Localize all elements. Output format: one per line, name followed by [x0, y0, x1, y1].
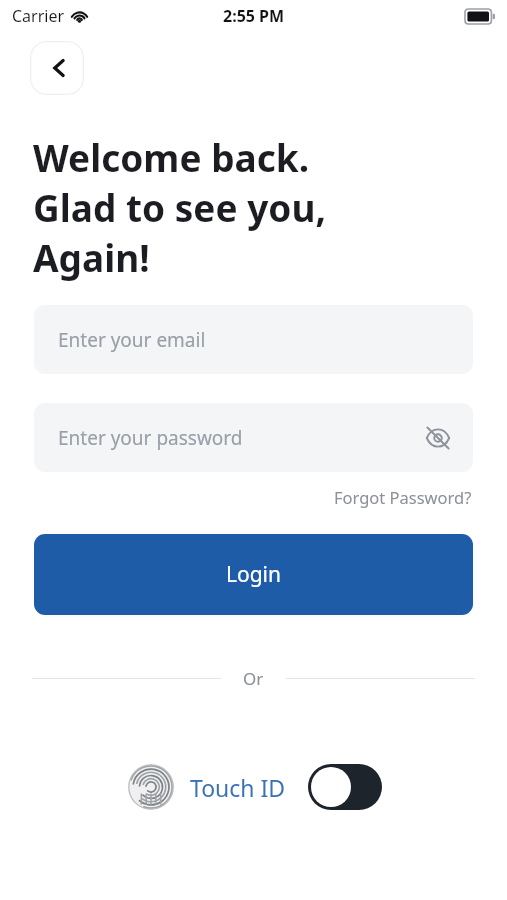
button[interactable]: Show password: [421, 421, 455, 455]
staticText: Enter your password: [58, 425, 243, 451]
button[interactable]: Back: [30, 41, 84, 95]
button[interactable]: Enter your password: [34, 403, 473, 472]
staticText: Enter your email: [58, 327, 206, 353]
staticText: Again!: [33, 232, 150, 282]
staticText: Carrier: [12, 5, 65, 27]
button[interactable]: Login: [34, 534, 473, 615]
staticText: 2:55 PM: [223, 5, 285, 27]
button[interactable]: Enter your email: [34, 305, 473, 374]
staticText: Login: [226, 560, 282, 589]
button[interactable]: Touch ID: [126, 762, 288, 812]
button[interactable]: Touch ID toggle: [308, 764, 382, 810]
staticText: Touch ID: [190, 772, 286, 803]
staticText: Glad to see you,: [33, 182, 327, 232]
staticText: Or: [243, 667, 264, 690]
staticText: Welcome back.: [33, 132, 310, 182]
staticText: Forgot Password?: [334, 486, 472, 508]
button[interactable]: Forgot Password?: [332, 484, 474, 510]
